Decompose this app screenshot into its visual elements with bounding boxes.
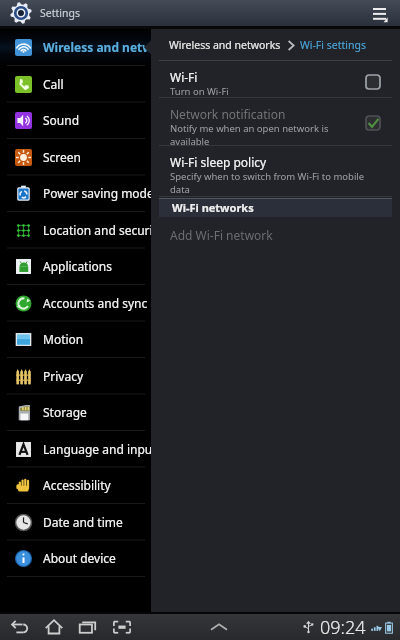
button[interactable]: Recent apps <box>75 614 101 640</box>
staticText: Notify me when an open network is <box>170 122 329 135</box>
button[interactable]: Network notification <box>151 98 400 146</box>
staticText: Wi-Fi sleep policy <box>170 154 267 170</box>
button[interactable]: Power saving mode <box>0 175 151 212</box>
staticText: Storage <box>43 404 87 420</box>
staticText: available <box>170 135 210 146</box>
staticText: Add Wi-Fi network <box>170 227 273 243</box>
staticText: Applications <box>43 258 112 274</box>
staticText: Sound <box>43 112 80 128</box>
button[interactable]: Language and input <box>0 431 151 468</box>
button[interactable]: Wi-Fi <box>365 74 381 90</box>
staticText: Wireless and networks <box>169 38 281 52</box>
button[interactable]: About device <box>0 540 151 577</box>
staticText: Wi-Fi <box>170 69 198 85</box>
staticText: Screen <box>43 149 82 165</box>
staticText: Network notification <box>170 106 286 122</box>
button[interactable]: Motion <box>0 321 151 358</box>
staticText: Accounts and sync <box>43 295 148 311</box>
button[interactable]: Screen <box>0 139 151 176</box>
button[interactable]: Accounts and sync <box>0 285 151 322</box>
button[interactable]: Wi-Fi sleep policy <box>151 146 400 197</box>
staticText: Turn on Wi-Fi <box>170 85 229 98</box>
staticText: About device <box>43 550 116 566</box>
button[interactable]: Back <box>7 614 33 640</box>
button[interactable]: Network notification <box>365 115 381 131</box>
button[interactable]: Expand <box>204 614 234 640</box>
staticText: Language and input <box>43 441 151 457</box>
button[interactable]: Sound <box>0 102 151 139</box>
staticText: data <box>170 183 190 196</box>
staticText: Date and time <box>43 514 123 530</box>
button[interactable]: Applications <box>0 248 151 285</box>
staticText: Call <box>43 76 64 92</box>
button[interactable]: Wi-Fi <box>151 61 400 98</box>
button[interactable]: Accessibility <box>0 467 151 504</box>
staticText: Accessibility <box>43 477 111 493</box>
button[interactable]: Menu <box>364 0 394 26</box>
staticText: Specify when to switch from Wi-Fi to mob… <box>170 170 365 183</box>
staticText: Settings <box>40 6 80 20</box>
staticText: Wireless and networks <box>43 39 151 55</box>
button[interactable]: Wireless and networks <box>0 29 151 66</box>
staticText: Wi-Fi networks <box>172 200 254 215</box>
staticText: Location and security <box>43 222 151 238</box>
button[interactable]: Screenshot <box>109 614 135 640</box>
button[interactable]: Home <box>41 614 67 640</box>
staticText: Motion <box>43 331 84 347</box>
button[interactable]: Storage <box>0 394 151 431</box>
staticText: Wi-Fi settings <box>300 38 366 52</box>
button[interactable]: Add Wi-Fi network <box>151 217 400 253</box>
staticText: Power saving mode <box>43 185 151 201</box>
button[interactable]: Privacy <box>0 358 151 395</box>
staticText: Privacy <box>43 368 84 384</box>
button[interactable]: Location and security <box>0 212 151 249</box>
staticText: 09:24 <box>320 615 366 640</box>
button[interactable]: Date and time <box>0 504 151 541</box>
button[interactable]: Call <box>0 66 151 103</box>
button[interactable]: Wi-Fi networks <box>159 198 392 217</box>
